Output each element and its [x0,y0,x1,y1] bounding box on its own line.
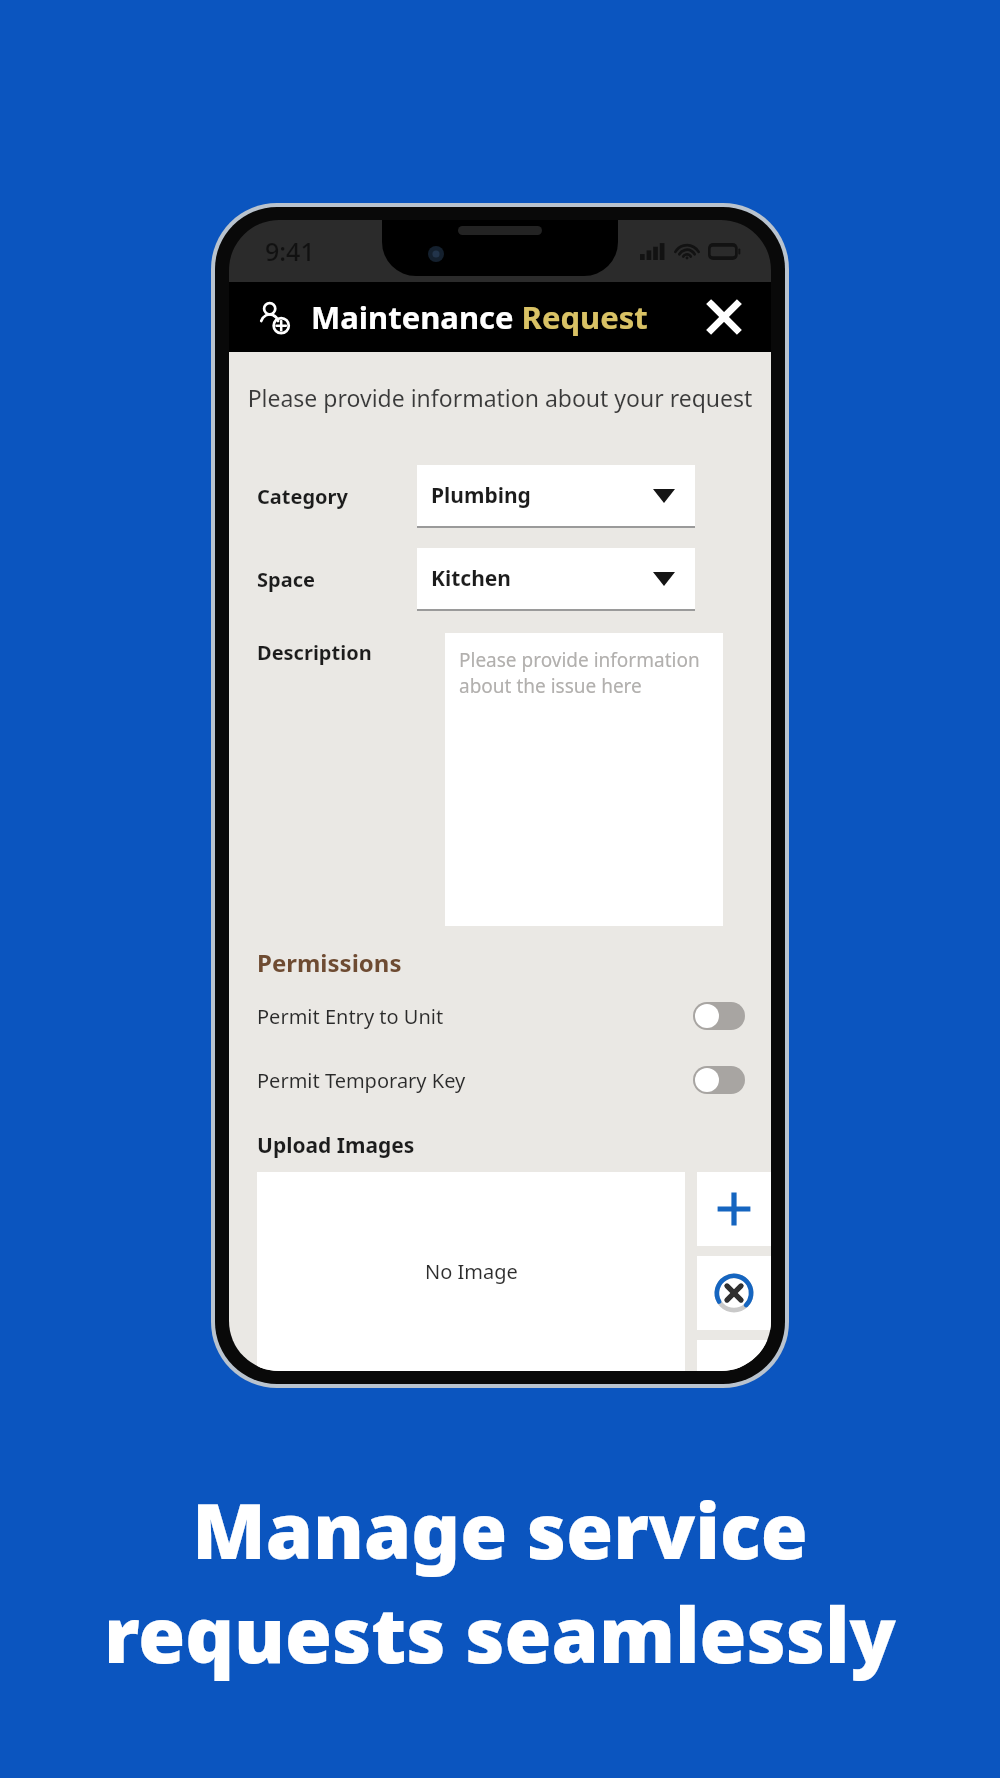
button[interactable]: Kitchen [417,548,695,611]
button[interactable]: No Image [257,1172,685,1371]
button[interactable]: Permit Temporary Key [229,1059,771,1101]
staticText: Manage service [192,1478,808,1582]
staticText: Please provide information about your re… [229,382,771,413]
button[interactable] [697,1340,771,1371]
staticText: requests seamlessly [104,1582,896,1686]
staticText: Category [257,483,348,510]
staticText: 9:41 [265,234,315,268]
staticText: Please provide information about the iss… [459,647,700,698]
button[interactable]: Cancel upload [697,1256,771,1330]
button[interactable]: Close [701,294,747,340]
button[interactable]: Please provide information about the iss… [445,633,723,926]
staticText: Permissions [257,946,402,979]
button[interactable]: Plumbing [417,465,695,528]
staticText: Space [257,566,315,593]
button[interactable]: Add person [253,296,295,338]
staticText: Maintenance Request [311,296,648,338]
staticText: Kitchen [431,564,512,593]
staticText: Description [257,639,445,666]
button[interactable]: Permit Entry to Unit [229,995,771,1037]
staticText: Permit Entry to Unit [257,1003,444,1030]
staticText: Upload Images [257,1131,415,1160]
staticText: Plumbing [431,481,531,510]
button[interactable]: Add image [697,1172,771,1246]
staticText: Permit Temporary Key [257,1067,466,1094]
staticText: No Image [425,1258,518,1285]
